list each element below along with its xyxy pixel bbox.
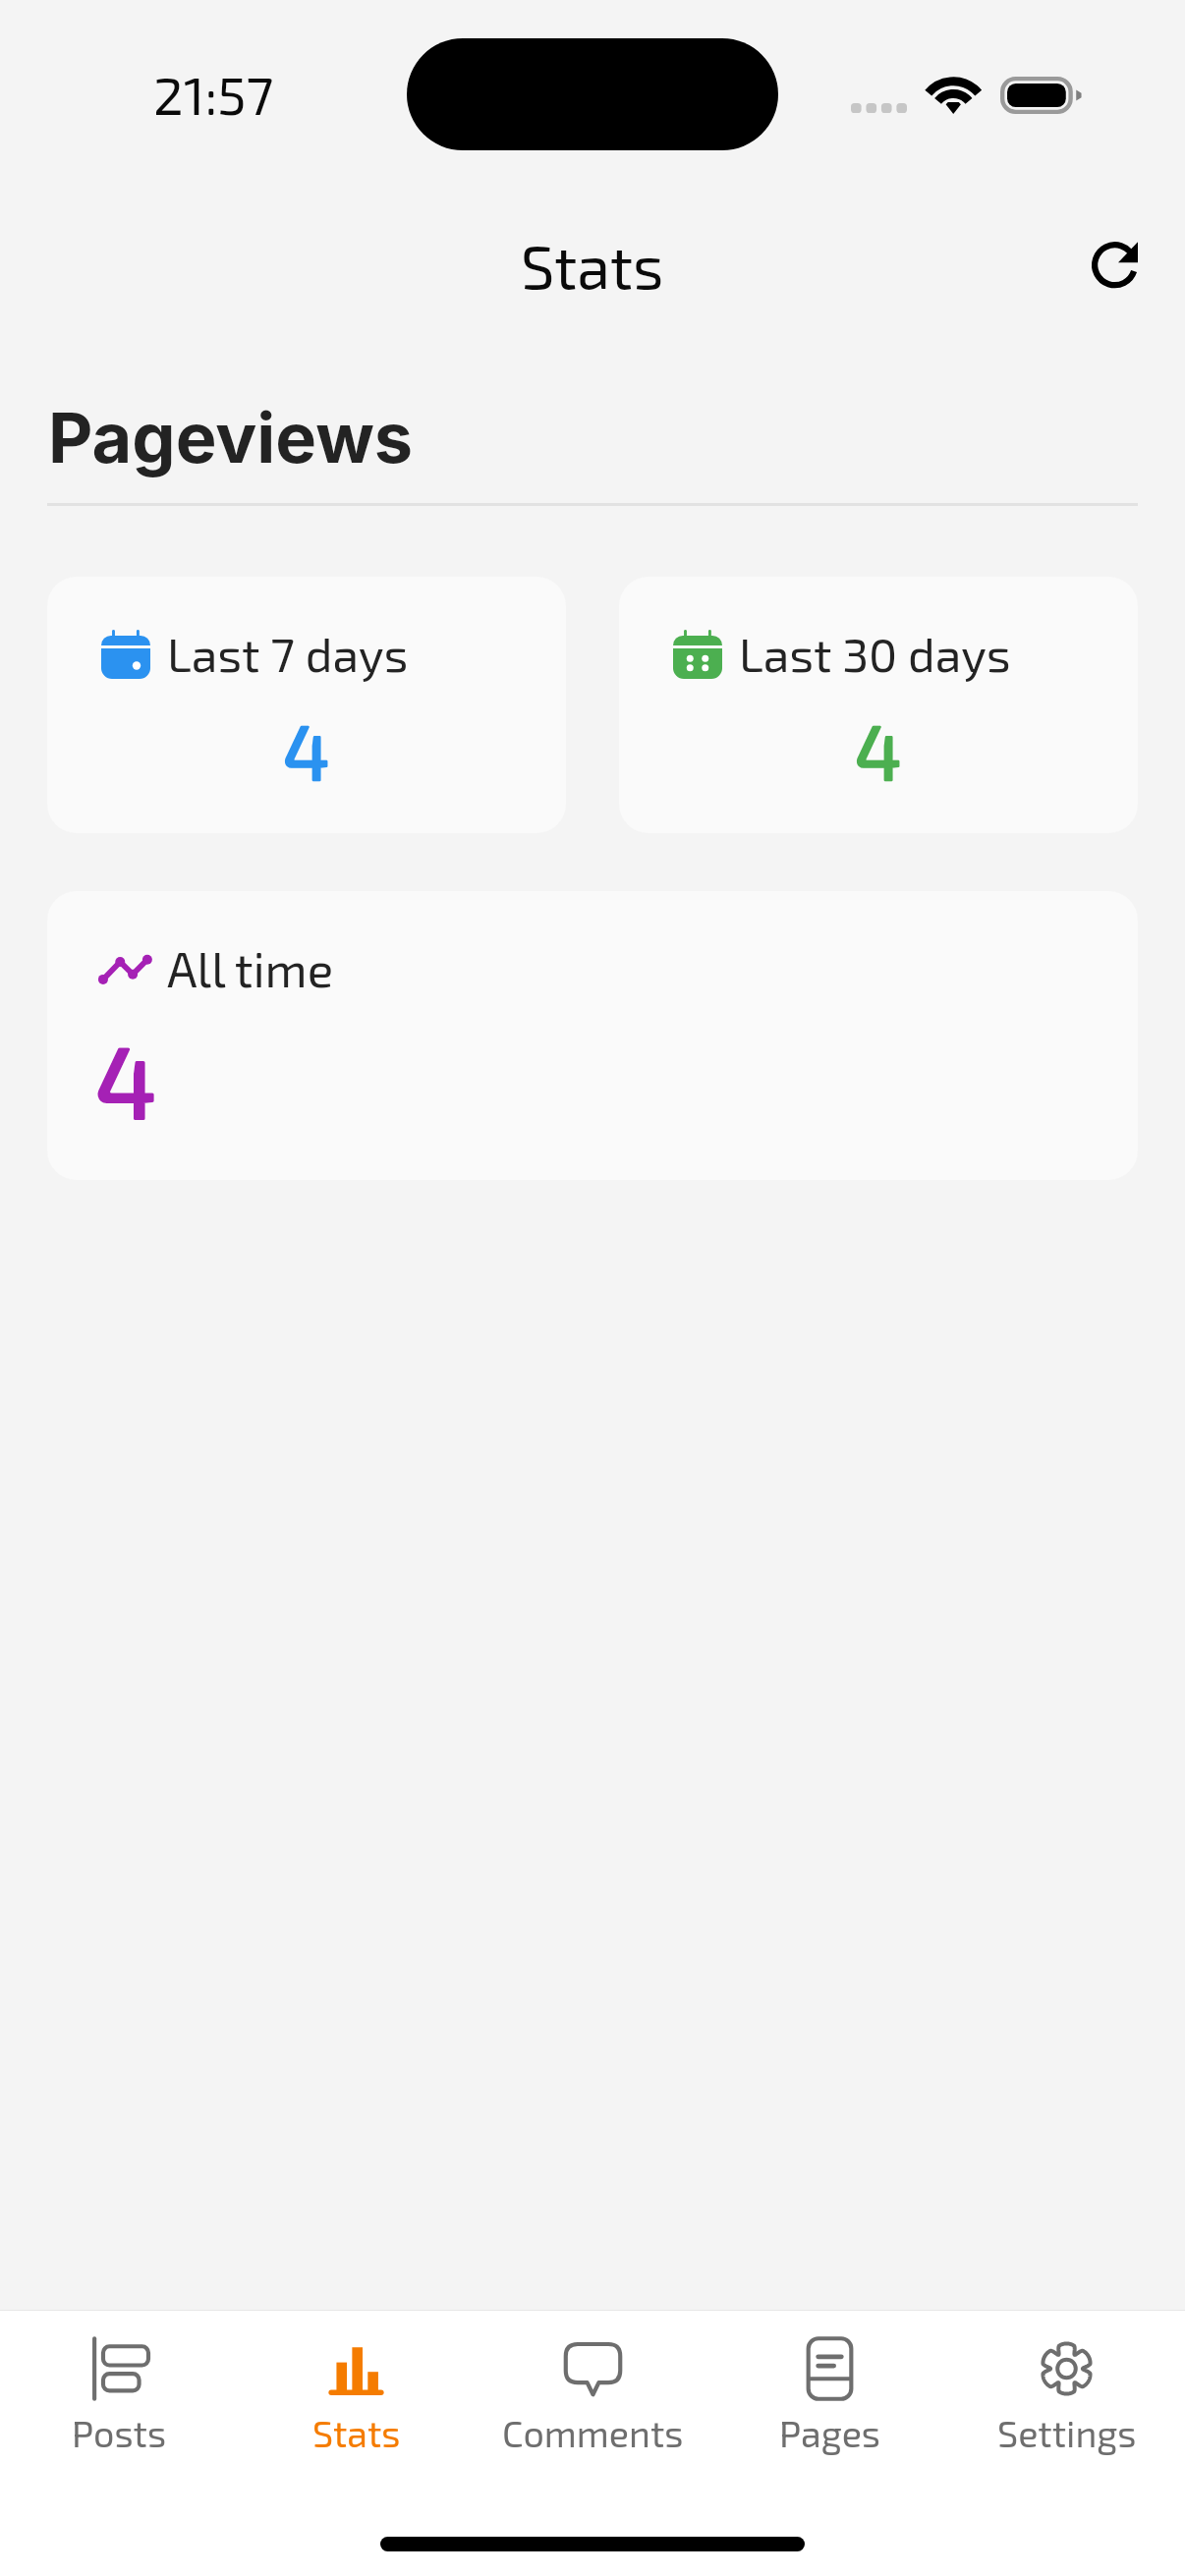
- staticText: Stats: [312, 2410, 401, 2454]
- button[interactable]: All time: [47, 891, 1138, 1180]
- staticText: 4: [855, 704, 902, 796]
- staticText: 4: [283, 704, 330, 796]
- button[interactable]: Last 7 days: [47, 577, 566, 833]
- staticText: Pages: [779, 2410, 880, 2454]
- staticText: 4: [855, 704, 902, 796]
- staticText: Last 30 days: [739, 625, 1011, 682]
- staticText: Settings: [997, 2410, 1137, 2454]
- staticText: 4: [283, 704, 330, 796]
- button[interactable]: Last 30 days: [619, 577, 1138, 833]
- button[interactable]: Refresh: [1067, 218, 1161, 312]
- staticText: Last 7 days: [167, 625, 409, 682]
- staticText: 4: [95, 1019, 157, 1139]
- staticText: Comments: [502, 2410, 684, 2454]
- button[interactable]: Settings: [948, 2310, 1185, 2427]
- staticText: Pageviews: [48, 396, 414, 479]
- staticText: 4: [95, 1019, 157, 1139]
- button[interactable]: Comments: [475, 2310, 711, 2427]
- staticText: All time: [167, 939, 334, 997]
- button[interactable]: Posts: [0, 2310, 238, 2427]
- staticText: Posts: [72, 2410, 167, 2454]
- button[interactable]: Pages: [711, 2310, 948, 2427]
- button[interactable]: Stats: [238, 2310, 475, 2427]
- staticText: Stats: [521, 229, 664, 301]
- staticText: 21:57: [153, 61, 274, 126]
